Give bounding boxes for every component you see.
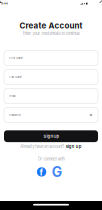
button[interactable]: Already have an account? bbox=[20, 144, 82, 150]
staticText: sign up bbox=[66, 144, 82, 149]
staticText: Already have an account? bbox=[20, 144, 64, 149]
button[interactable]: Last Name bbox=[4, 69, 98, 84]
staticText: f bbox=[40, 167, 44, 177]
staticText: Enter your credentials to continue bbox=[22, 31, 79, 36]
staticText: Or connect with bbox=[37, 156, 64, 161]
staticText: Last Name bbox=[9, 75, 22, 79]
staticText: Password bbox=[9, 113, 21, 117]
staticText: 11:44 bbox=[1, 2, 8, 5]
staticText: G bbox=[52, 163, 62, 180]
button[interactable]: Email bbox=[4, 88, 98, 103]
staticText: Create Account bbox=[19, 21, 82, 30]
staticText: Email bbox=[9, 94, 16, 98]
button[interactable]: Password bbox=[4, 107, 98, 122]
button[interactable]: Continue with Facebook bbox=[37, 167, 46, 177]
button[interactable]: First Name bbox=[4, 50, 98, 65]
button[interactable]: Sign Up bbox=[4, 130, 98, 142]
staticText: Sign Up bbox=[43, 134, 58, 139]
staticText: First Name bbox=[9, 56, 23, 60]
button[interactable]: Continue with Google bbox=[52, 167, 61, 177]
